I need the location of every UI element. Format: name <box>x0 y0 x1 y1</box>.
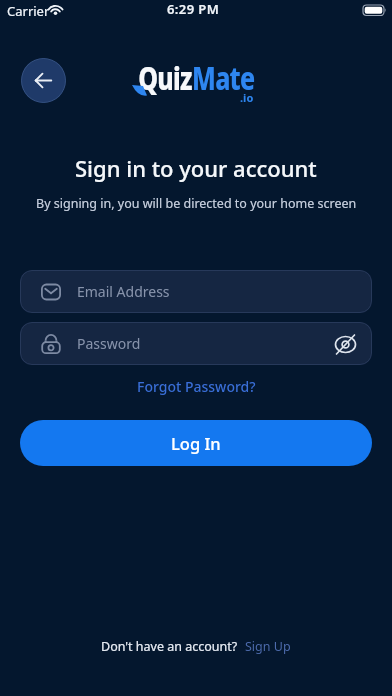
staticText: Quiz <box>138 56 192 100</box>
button[interactable] <box>21 58 66 103</box>
staticText: Carrier <box>7 2 50 20</box>
staticText: Email Address <box>77 282 170 301</box>
staticText: Don't have an account? <box>101 638 238 655</box>
button[interactable] <box>331 330 359 358</box>
button[interactable]: Sign Up <box>245 638 291 655</box>
button[interactable]: Email Address <box>20 270 372 313</box>
button[interactable]: Log In <box>20 420 372 466</box>
staticText: Sign Up <box>245 638 291 655</box>
button[interactable]: Forgot Password? <box>137 377 256 396</box>
button[interactable]: Password <box>20 322 372 365</box>
staticText: Log In <box>171 432 221 454</box>
staticText: By signing in, you will be directed to y… <box>36 195 357 212</box>
staticText: .io <box>240 90 254 105</box>
staticText: Mate <box>192 56 254 100</box>
staticText: 6:29 PM <box>167 0 220 18</box>
staticText: Forgot Password? <box>137 377 256 396</box>
staticText: Password <box>77 334 141 353</box>
staticText: Sign in to your account <box>75 153 317 183</box>
